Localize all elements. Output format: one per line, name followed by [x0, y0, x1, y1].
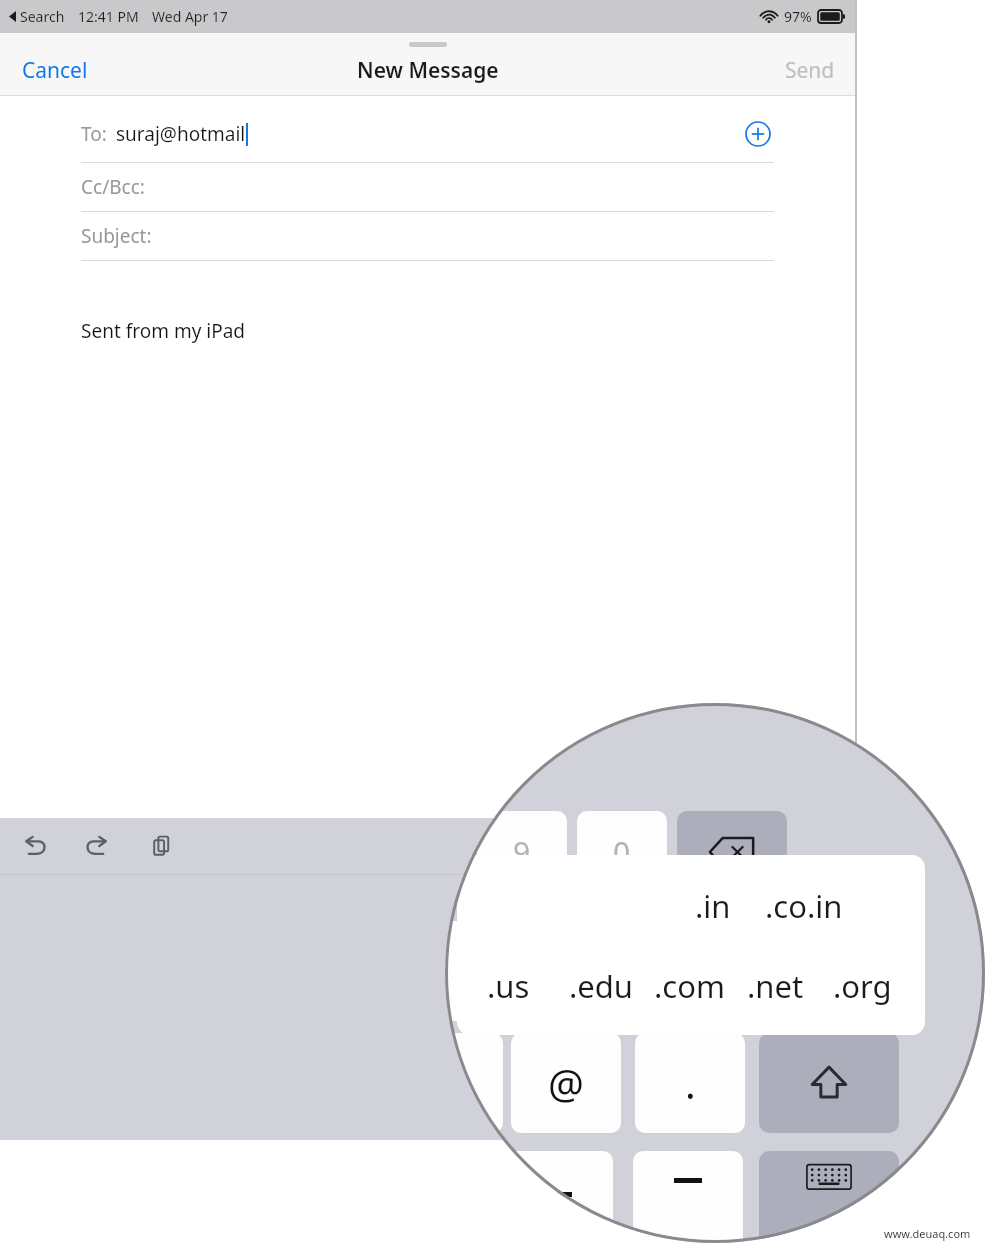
button[interactable]: 0 — [577, 811, 667, 893]
staticText: Cc/Bcc: — [81, 174, 145, 200]
button[interactable]: Redo — [81, 829, 115, 863]
button[interactable]: Shift — [759, 1033, 899, 1133]
button[interactable]: @ — [511, 1033, 621, 1133]
button[interactable]: Cc/Bcc: — [0, 163, 855, 211]
button[interactable]: To: — [0, 106, 855, 162]
staticText: Wed Apr 17 — [152, 7, 228, 26]
button[interactable]: .net — [747, 965, 804, 1007]
staticText: Search — [20, 7, 65, 26]
button[interactable]: Add contact — [737, 113, 779, 155]
staticText: 97% — [784, 7, 812, 26]
button[interactable]: Undo — [17, 829, 51, 863]
staticText: . — [685, 1056, 696, 1110]
staticText: 0 — [613, 832, 631, 873]
button[interactable]: .org — [833, 965, 892, 1007]
button[interactable] — [445, 1033, 503, 1133]
button[interactable]: Send — [765, 48, 855, 93]
button[interactable]: .in — [695, 885, 731, 927]
button[interactable]: Delete — [677, 811, 787, 893]
button[interactable]: .com — [654, 965, 725, 1007]
staticText: 9 — [513, 832, 531, 873]
button[interactable]: . — [635, 1033, 745, 1133]
staticText: Sent from my iPad — [81, 318, 246, 344]
button[interactable]: .co.in — [765, 885, 843, 927]
staticText: @ — [548, 1056, 584, 1110]
button[interactable]: Paste — [145, 829, 179, 863]
staticText: www.deuaq.com — [884, 1226, 971, 1241]
button[interactable]: Subject: — [0, 212, 855, 260]
staticText: Subject: — [81, 223, 152, 249]
staticText: Send — [785, 56, 835, 85]
staticText: 12:41 PM — [78, 7, 139, 26]
staticText: To: — [81, 121, 107, 147]
staticText: Cancel — [22, 56, 88, 85]
staticText: New Message — [357, 56, 499, 85]
button[interactable]: 9 — [477, 811, 567, 893]
button[interactable] — [503, 1151, 613, 1243]
button[interactable] — [633, 1151, 743, 1243]
button[interactable]: .us — [487, 965, 530, 1007]
button[interactable]: Hide keyboard — [759, 1151, 899, 1243]
staticText: suraj@hotmail — [116, 121, 246, 147]
button[interactable]: Cancel — [0, 48, 110, 93]
button[interactable]: .edu — [569, 965, 634, 1007]
